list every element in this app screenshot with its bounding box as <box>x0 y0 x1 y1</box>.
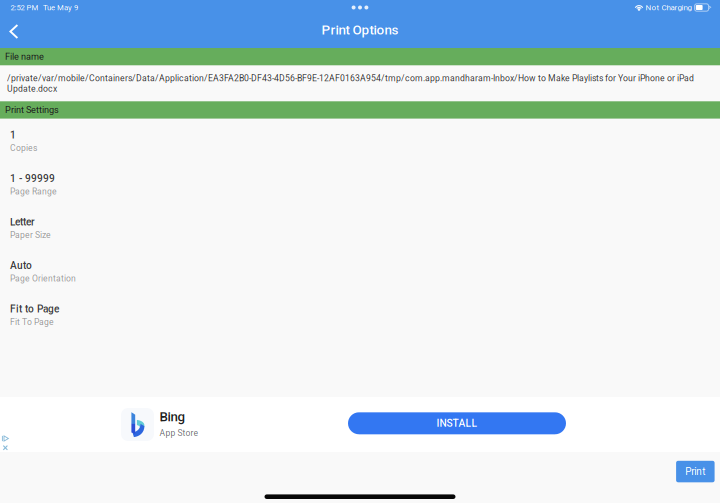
button[interactable]: 1 - 99999 <box>0 169 720 212</box>
button[interactable]: 1 <box>0 125 720 169</box>
staticText: 1 - 99999 <box>10 173 55 184</box>
staticText: Tue May 9 <box>43 3 78 12</box>
staticText: Fit to Page <box>10 303 59 315</box>
staticText: Not Charging <box>646 3 692 12</box>
staticText: /private/var/mobile/Containers/Data/Appl… <box>7 73 694 94</box>
staticText: Copies <box>10 143 37 153</box>
staticText: INSTALL <box>436 417 477 429</box>
staticText: Page Orientation <box>10 273 76 284</box>
button[interactable]: Auto <box>0 256 720 299</box>
button[interactable]: Letter <box>0 212 720 256</box>
button[interactable]: Back <box>0 15 34 48</box>
staticText: Print Options <box>321 22 398 38</box>
staticText: 2:52 PM <box>10 3 38 12</box>
staticText: Bing <box>159 409 185 425</box>
staticText: Print Settings <box>5 105 59 115</box>
button[interactable]: Fit to Page <box>0 299 720 343</box>
button[interactable]: Print <box>676 461 715 482</box>
staticText: Auto <box>10 260 32 271</box>
staticText: Page Range <box>10 186 57 197</box>
staticText: App Store <box>159 428 198 438</box>
staticText: 1 <box>10 129 16 141</box>
staticText: Fit To Page <box>10 317 54 327</box>
staticText: File name <box>5 51 44 62</box>
staticText: Print <box>685 466 705 477</box>
staticText: Paper Size <box>10 230 51 240</box>
button[interactable]: INSTALL <box>348 412 566 434</box>
staticText: Letter <box>10 216 35 228</box>
